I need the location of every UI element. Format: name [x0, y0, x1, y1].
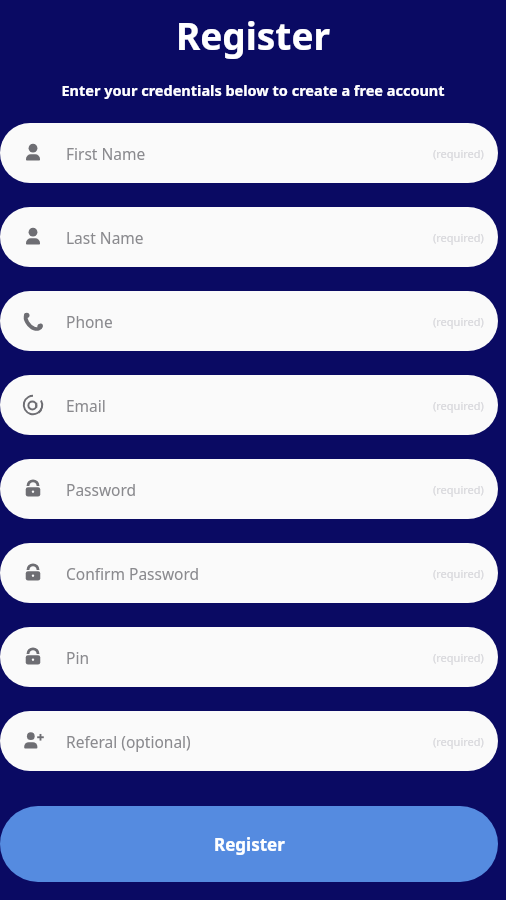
- staticText: (required): [433, 734, 484, 749]
- button[interactable]: Register: [0, 806, 498, 882]
- staticText: (required): [433, 314, 484, 329]
- staticText: Password: [66, 479, 137, 500]
- staticText: First Name: [66, 143, 146, 164]
- staticText: (required): [433, 566, 484, 581]
- button[interactable]: Password: [0, 459, 498, 519]
- staticText: (required): [433, 146, 484, 161]
- staticText: Pin: [66, 647, 89, 668]
- staticText: (required): [433, 230, 484, 245]
- button[interactable]: First Name: [0, 123, 498, 183]
- button[interactable]: Pin: [0, 627, 498, 687]
- button[interactable]: Email: [0, 375, 498, 435]
- staticText: Referal (optional): [66, 731, 191, 752]
- staticText: (required): [433, 482, 484, 497]
- button[interactable]: Referal (optional): [0, 711, 498, 771]
- button[interactable]: Phone: [0, 291, 498, 351]
- staticText: Confirm Password: [66, 563, 200, 584]
- staticText: (required): [433, 398, 484, 413]
- staticText: Last Name: [66, 227, 144, 248]
- button[interactable]: Last Name: [0, 207, 498, 267]
- staticText: Phone: [66, 311, 113, 332]
- staticText: Register: [214, 833, 285, 856]
- staticText: Enter your credentials below to create a…: [12, 80, 494, 100]
- staticText: Email: [66, 395, 106, 416]
- staticText: Register: [0, 10, 506, 60]
- button[interactable]: Confirm Password: [0, 543, 498, 603]
- staticText: (required): [433, 650, 484, 665]
